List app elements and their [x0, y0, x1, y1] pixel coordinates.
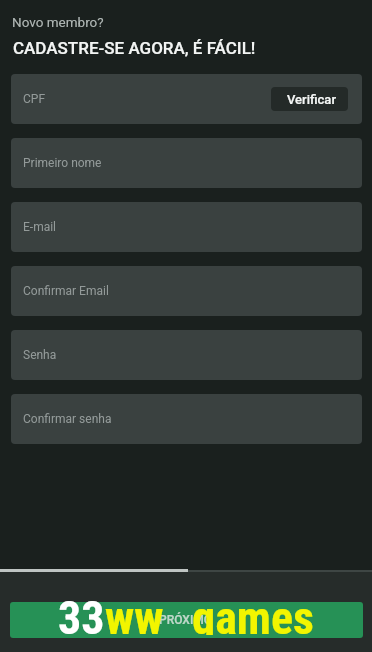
- staticText: Primeiro nome: [23, 156, 102, 170]
- staticText: Confirmar senha: [23, 412, 112, 426]
- button[interactable]: PRÓXIMO: [0, 572, 372, 652]
- staticText: CPF: [23, 92, 46, 106]
- staticText: ww: [105, 591, 164, 635]
- staticText: PRÓXIMO: [159, 613, 213, 627]
- button[interactable]: E-mail: [11, 202, 362, 252]
- button[interactable]: Primeiro nome: [11, 138, 362, 188]
- button[interactable]: Senha: [11, 330, 362, 380]
- staticText: Senha: [23, 348, 57, 362]
- other: Progresso do cadastro: [0, 569, 372, 572]
- button[interactable]: Confirmar Email: [11, 266, 362, 316]
- staticText: Novo membro?: [12, 14, 104, 30]
- staticText: Confirmar Email: [23, 284, 109, 298]
- staticText: CADASTRE-SE AGORA, É FÁCIL!: [13, 38, 256, 58]
- staticText: E-mail: [23, 220, 57, 234]
- button[interactable]: Confirmar senha: [11, 394, 362, 444]
- staticText: 33: [58, 591, 105, 635]
- button[interactable]: CPF: [11, 74, 362, 124]
- staticText: Verificar: [287, 92, 336, 107]
- staticText: games: [192, 591, 314, 635]
- button[interactable]: Verificar: [271, 87, 348, 111]
